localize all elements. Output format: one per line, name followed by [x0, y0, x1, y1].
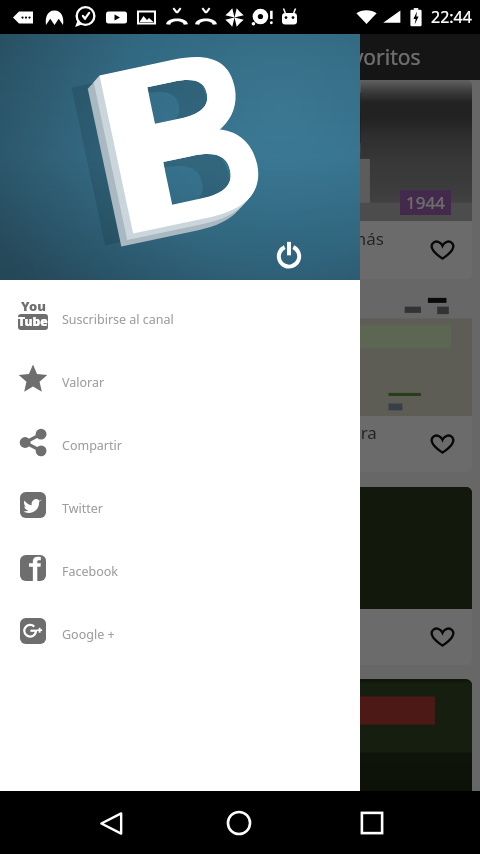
button[interactable]: You — [0, 284, 360, 347]
button[interactable]: Back — [89, 801, 133, 845]
button[interactable]: Compartir — [0, 410, 360, 473]
button[interactable]: Recents — [350, 801, 394, 845]
button[interactable]: Favorite — [8, 679, 472, 854]
staticText: Facebook — [62, 563, 119, 580]
button[interactable]: Valorar — [0, 347, 360, 410]
button[interactable]: La abuela no sabía nada, como si no hubi… — [8, 291, 472, 472]
staticText: Favoritos — [330, 43, 421, 72]
button[interactable]: 1944 — [8, 80, 472, 279]
staticText: Twitter — [62, 500, 103, 517]
staticText: La historia real de quien ha sido el pad… — [22, 227, 384, 273]
button[interactable]: Home — [217, 801, 261, 845]
staticText: You — [21, 297, 46, 315]
button[interactable]: Google + — [0, 599, 360, 662]
staticText: Tube — [18, 314, 48, 329]
button[interactable]: Favorite — [420, 228, 464, 272]
staticText: Valorar — [62, 374, 105, 391]
staticText: 1944 — [406, 191, 445, 214]
button[interactable]: La historia de la madre que mata a su pr… — [8, 487, 472, 665]
button[interactable]: Favorite — [420, 422, 464, 466]
button[interactable]: Facebook — [0, 536, 360, 599]
button[interactable]: Twitter — [0, 473, 360, 536]
button[interactable]: Power — [272, 238, 306, 272]
staticText: Suscribirse al canal — [62, 311, 174, 328]
staticText: 22:44 — [431, 6, 472, 28]
staticText: Google + — [62, 626, 115, 643]
staticText: Compartir — [62, 437, 122, 454]
button[interactable]: Favorite — [420, 615, 464, 659]
staticText: La abuela no sabía nada, como si no hubi… — [22, 421, 377, 467]
staticText: La historia de la madre que mata a su pr… — [22, 614, 286, 660]
